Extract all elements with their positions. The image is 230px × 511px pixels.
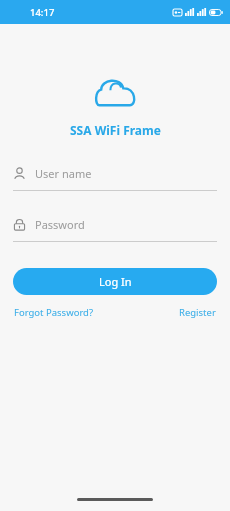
button[interactable]: Log In bbox=[13, 268, 217, 295]
button[interactable]: Forgot Password? bbox=[13, 304, 95, 321]
staticText: User name bbox=[35, 166, 92, 181]
staticText: Log In bbox=[99, 274, 132, 289]
staticText: SSA WiFi Frame bbox=[70, 122, 161, 138]
other: Password bbox=[13, 218, 26, 231]
button[interactable]: Password bbox=[13, 213, 217, 242]
staticText: Forgot Password? bbox=[14, 306, 94, 319]
staticText: Password bbox=[35, 217, 85, 232]
staticText: 14:17 bbox=[30, 6, 55, 19]
other: User name bbox=[13, 167, 26, 180]
button[interactable]: User name bbox=[13, 162, 217, 191]
button[interactable]: Register bbox=[178, 304, 217, 321]
staticText: Register bbox=[179, 306, 216, 319]
